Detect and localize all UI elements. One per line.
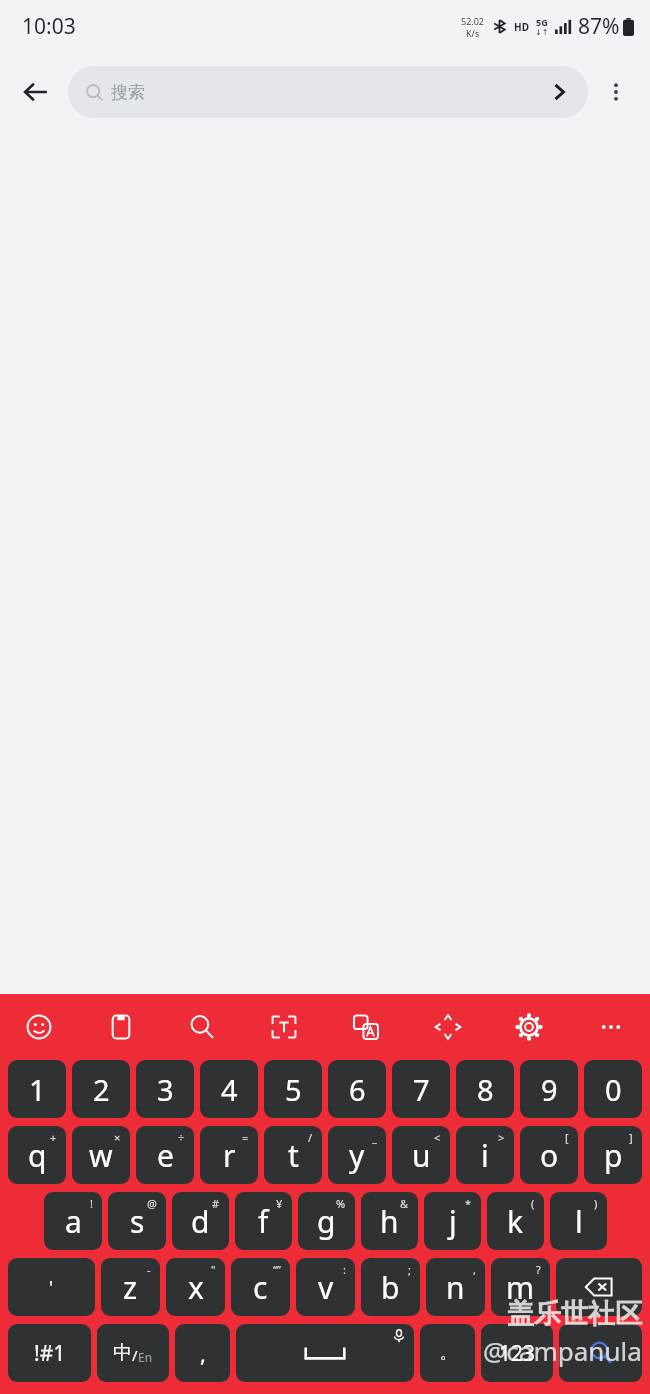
staticText: # [212, 1196, 220, 1211]
staticText: ; [408, 1262, 411, 1277]
staticText: x [188, 1267, 204, 1308]
button[interactable]: Translate [335, 999, 397, 1055]
staticText: 中 [113, 1341, 132, 1365]
button[interactable]: e [136, 1126, 194, 1184]
button[interactable]: b [361, 1258, 420, 1316]
button[interactable]: y [328, 1126, 386, 1184]
button[interactable]: j [424, 1192, 481, 1250]
button[interactable]: s [108, 1192, 166, 1250]
button[interactable]: q [8, 1126, 66, 1184]
staticText: 5G [536, 16, 548, 28]
button[interactable]: p [584, 1126, 642, 1184]
other: Go [548, 81, 570, 103]
button[interactable]: Back [10, 66, 62, 118]
button[interactable]: 5 [264, 1060, 322, 1118]
button[interactable]: 3 [136, 1060, 194, 1118]
staticText: ! [90, 1196, 93, 1211]
button[interactable]: Settings [498, 999, 560, 1055]
staticText: c [253, 1267, 268, 1308]
staticText: i [481, 1135, 489, 1176]
button[interactable]: Resize keyboard [417, 999, 479, 1055]
button[interactable]: !#1 [8, 1324, 91, 1382]
staticText: - [147, 1262, 151, 1277]
button[interactable]: More [580, 999, 642, 1055]
staticText: K/s [466, 27, 480, 39]
staticText: r [223, 1135, 236, 1176]
staticText: q [28, 1135, 47, 1176]
button[interactable]: l [550, 1192, 607, 1250]
staticText: z [123, 1267, 138, 1308]
button[interactable]: 9 [520, 1060, 578, 1118]
button[interactable]: k [487, 1192, 544, 1250]
staticText: + [50, 1130, 57, 1145]
other: Voice input [392, 1329, 406, 1343]
staticText: En [138, 1349, 153, 1365]
button[interactable]: 6 [328, 1060, 386, 1118]
button[interactable]: More options [592, 68, 640, 116]
staticText: 7 [413, 1070, 430, 1109]
button[interactable]: 。 [420, 1324, 475, 1382]
staticText: h [380, 1201, 399, 1242]
other: Backspace [584, 1272, 614, 1302]
staticText: f [258, 1201, 269, 1242]
staticText: 123 [499, 1339, 536, 1368]
staticText: “” [273, 1262, 281, 1277]
staticText: : [343, 1262, 346, 1277]
button[interactable]: 0 [584, 1060, 642, 1118]
button[interactable]: v [296, 1258, 355, 1316]
staticText: 搜索 [111, 82, 145, 103]
button[interactable]: Backspace [556, 1258, 642, 1316]
button[interactable]: i [456, 1126, 514, 1184]
staticText: / [308, 1130, 313, 1145]
button[interactable]: Emoji [8, 999, 70, 1055]
staticText: @ [147, 1196, 157, 1211]
staticText: u [412, 1135, 431, 1176]
button[interactable]: h [361, 1192, 418, 1250]
staticText: % [336, 1196, 346, 1211]
button[interactable]: t [264, 1126, 322, 1184]
staticText: ? [536, 1262, 541, 1277]
button[interactable]: ' [8, 1258, 95, 1316]
staticText: b [381, 1267, 400, 1308]
staticText: o [540, 1135, 559, 1176]
button[interactable]: 4 [200, 1060, 258, 1118]
staticText: p [604, 1135, 623, 1176]
button[interactable]: g [298, 1192, 355, 1250]
button[interactable]: f [235, 1192, 292, 1250]
button[interactable]: Clipboard [90, 999, 152, 1055]
staticText: [ [565, 1130, 569, 1145]
staticText: 6 [349, 1070, 366, 1109]
button[interactable]: n [426, 1258, 485, 1316]
button[interactable]: Text recognition [253, 999, 315, 1055]
button[interactable]: 123 [481, 1324, 553, 1382]
button[interactable]: 8 [456, 1060, 514, 1118]
button[interactable]: u [392, 1126, 450, 1184]
button[interactable]: Search [171, 999, 233, 1055]
staticText: / [132, 1345, 138, 1365]
button[interactable]: c [231, 1258, 290, 1316]
staticText: ÷ [178, 1130, 185, 1145]
staticText: w [89, 1135, 113, 1176]
button[interactable]: 中 [97, 1324, 169, 1382]
button[interactable]: z [101, 1258, 160, 1316]
button[interactable]: m [491, 1258, 550, 1316]
staticText: 52.02 [461, 15, 485, 27]
button[interactable]: r [200, 1126, 258, 1184]
button[interactable]: a [44, 1192, 102, 1250]
button[interactable]: x [166, 1258, 225, 1316]
button[interactable]: Voice input [236, 1324, 414, 1382]
button[interactable]: 搜索 [68, 66, 588, 118]
button[interactable]: 7 [392, 1060, 450, 1118]
button[interactable]: , [175, 1324, 230, 1382]
staticText: g [317, 1201, 336, 1242]
staticText: 1 [29, 1070, 46, 1109]
button[interactable]: 1 [8, 1060, 66, 1118]
button[interactable]: Search [559, 1324, 642, 1382]
button[interactable]: w [72, 1126, 130, 1184]
staticText: × [114, 1130, 121, 1145]
button[interactable]: 2 [72, 1060, 130, 1118]
button[interactable]: d [172, 1192, 229, 1250]
staticText: = [242, 1130, 249, 1145]
staticText: t [288, 1135, 299, 1176]
button[interactable]: o [520, 1126, 578, 1184]
